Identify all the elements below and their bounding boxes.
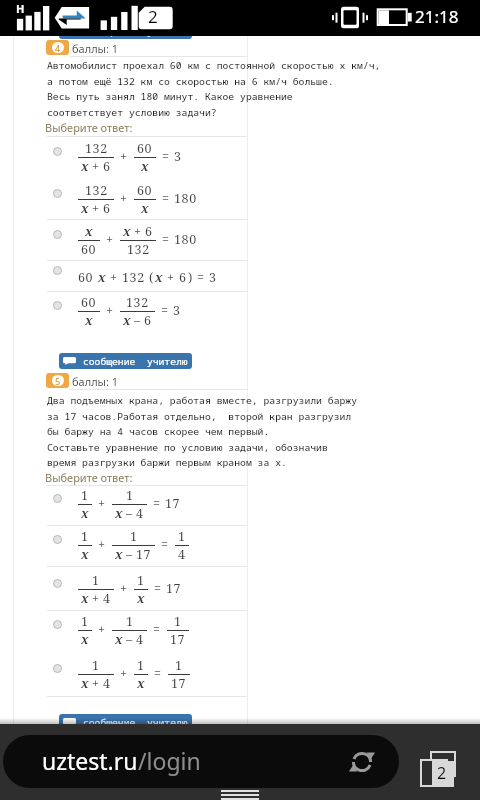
- staticText: 60: [137, 182, 153, 199]
- staticText: x: [81, 546, 89, 560]
- staticText: =: [161, 536, 169, 553]
- staticText: 132: [122, 269, 145, 286]
- staticText: 6: [144, 312, 152, 326]
- staticText: x: [85, 312, 93, 326]
- staticText: x: [81, 158, 89, 172]
- staticText: 1: [81, 487, 89, 504]
- staticText: =: [162, 231, 170, 248]
- staticText: 132: [127, 241, 150, 255]
- staticText: +: [106, 231, 114, 248]
- staticText: 1: [178, 528, 186, 545]
- staticText: 6: [103, 200, 111, 214]
- staticText: x: [81, 675, 89, 689]
- staticText: +: [120, 580, 128, 597]
- staticText: =: [161, 302, 169, 319]
- staticText: Два подъемных крана, работая вместе, раз…: [47, 394, 358, 407]
- staticText: (: [149, 269, 154, 286]
- staticText: 1: [174, 613, 182, 630]
- staticText: 2: [148, 5, 158, 28]
- staticText: бы баржу на 4 часов скорее чем первый.: [47, 425, 270, 438]
- staticText: 4: [103, 590, 111, 604]
- staticText: x: [98, 269, 106, 286]
- staticText: x: [123, 312, 131, 326]
- staticText: 1: [81, 613, 89, 630]
- staticText: x: [81, 631, 89, 645]
- staticText: 17: [166, 580, 182, 597]
- staticText: +: [92, 675, 100, 689]
- staticText: =: [197, 269, 205, 286]
- staticText: 60: [81, 241, 97, 255]
- staticText: +: [120, 148, 128, 165]
- button[interactable]: Tabs: [418, 751, 460, 791]
- button[interactable]: 4: [46, 40, 69, 55]
- staticText: Составьте уравнение по условию задачи, о…: [47, 441, 328, 454]
- staticText: x: [81, 590, 89, 604]
- staticText: Выберите ответ:: [45, 470, 133, 485]
- staticText: +: [92, 158, 100, 172]
- staticText: x: [123, 223, 131, 240]
- staticText: =: [162, 190, 170, 207]
- staticText: 17: [170, 631, 186, 645]
- staticText: x: [137, 675, 145, 689]
- staticText: –: [134, 312, 141, 326]
- staticText: +: [167, 269, 175, 286]
- staticText: 1: [175, 657, 183, 674]
- staticText: 17: [136, 546, 152, 560]
- staticText: –: [126, 505, 133, 519]
- staticText: Весь путь занял 180 минут. Какое уравнен…: [47, 90, 293, 103]
- staticText: 180: [174, 190, 197, 207]
- button[interactable]: сообщение учителю: [59, 353, 192, 369]
- staticText: 6: [179, 269, 187, 286]
- staticText: x: [81, 200, 89, 214]
- button[interactable]: сообщение учителю: [59, 23, 192, 39]
- staticText: 132: [85, 182, 108, 199]
- staticText: время разгрузки баржи первым краном за x…: [47, 456, 287, 469]
- staticText: Выберите ответ:: [45, 120, 133, 135]
- staticText: x: [115, 505, 123, 519]
- button[interactable]: Reload: [349, 749, 375, 775]
- staticText: 60: [78, 269, 94, 286]
- button[interactable]: uztest.ru: [3, 735, 399, 788]
- staticText: 5: [55, 375, 61, 386]
- staticText: +: [98, 536, 106, 553]
- staticText: ): [188, 269, 193, 286]
- staticText: x: [85, 223, 93, 240]
- staticText: 132: [85, 140, 108, 157]
- staticText: 1: [81, 528, 89, 545]
- staticText: +: [98, 495, 106, 512]
- staticText: +: [134, 223, 142, 240]
- staticText: 4: [136, 505, 144, 519]
- staticText: =: [153, 495, 161, 512]
- staticText: 1: [92, 572, 100, 589]
- staticText: баллы: 1: [72, 41, 119, 56]
- staticText: сообщение учителю: [83, 25, 188, 38]
- staticText: 1: [130, 528, 138, 545]
- staticText: –: [126, 631, 133, 645]
- staticText: 1: [126, 487, 134, 504]
- button[interactable]: сообщение учителю: [59, 714, 192, 730]
- staticText: 17: [165, 495, 181, 512]
- staticText: 1: [137, 572, 145, 589]
- staticText: x: [115, 546, 123, 560]
- staticText: =: [154, 580, 162, 597]
- staticText: за 17 часов.Работая отдельно, второй кра…: [47, 410, 352, 423]
- staticText: а потом ещё 132 км со скоростью на 6 км/…: [47, 75, 334, 88]
- staticText: 1: [137, 657, 145, 674]
- staticText: 1: [92, 657, 100, 674]
- staticText: 4: [136, 631, 144, 645]
- staticText: 1: [126, 613, 134, 630]
- staticText: +: [110, 269, 118, 286]
- button[interactable]: 5: [46, 373, 69, 388]
- staticText: +: [92, 590, 100, 604]
- staticText: –: [126, 546, 133, 560]
- staticText: 6: [103, 158, 111, 172]
- staticText: 4: [103, 675, 111, 689]
- staticText: 132: [126, 294, 149, 311]
- staticText: +: [120, 665, 128, 682]
- staticText: 60: [137, 140, 153, 157]
- staticText: =: [153, 621, 161, 638]
- staticText: +: [106, 302, 114, 319]
- staticText: =: [162, 148, 170, 165]
- staticText: H: [16, 1, 25, 16]
- staticText: uztest.ru: [42, 745, 138, 776]
